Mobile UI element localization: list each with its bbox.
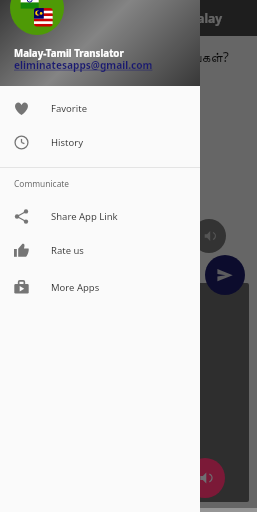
staticText: More Apps [51,281,100,294]
staticText: History [51,136,83,149]
button[interactable]: Favorite [0,92,200,125]
button[interactable]: Translate [205,255,245,295]
staticText: Malay-Tamil Translator [14,47,124,60]
staticText: Share App Link [51,210,118,223]
button[interactable]: Speak source text [192,219,226,253]
staticText: உங்கள் உரையை உள்ளிடுங்கள்? [38,47,229,66]
staticText: Tamil to Malay [135,10,223,26]
button[interactable]: Share App Link [0,200,200,233]
staticText: eliminatesapps@gmail.com [14,58,153,72]
staticText: Favorite [51,102,87,115]
button[interactable]: Rate us [0,234,200,267]
staticText: Communicate [14,178,70,189]
button[interactable]: More Apps [0,271,200,304]
button[interactable]: History [0,126,200,159]
button[interactable]: Speak translation [185,458,225,498]
staticText: Rate us [51,244,84,257]
